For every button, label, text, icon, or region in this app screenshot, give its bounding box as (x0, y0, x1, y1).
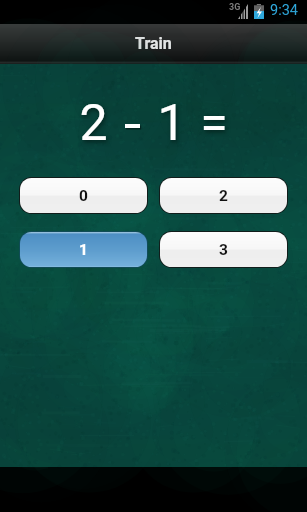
staticText: 2 (219, 187, 228, 205)
button[interactable]: 0 (20, 178, 147, 213)
button[interactable]: 1 (20, 232, 147, 267)
staticText: 3 (219, 241, 228, 259)
staticText: 9:34 (270, 2, 298, 19)
staticText: 1 (79, 241, 88, 259)
staticText: 2 (79, 94, 108, 153)
staticText: 3G (229, 2, 241, 13)
button[interactable]: 2 (160, 178, 287, 213)
button[interactable]: 3 (160, 232, 287, 267)
staticText: = (200, 94, 228, 153)
staticText: Train (135, 34, 172, 53)
staticText: 0 (79, 187, 88, 205)
staticText: 1 (157, 94, 186, 153)
other: Battery charging (254, 4, 264, 19)
other: Signal strength (238, 4, 248, 19)
